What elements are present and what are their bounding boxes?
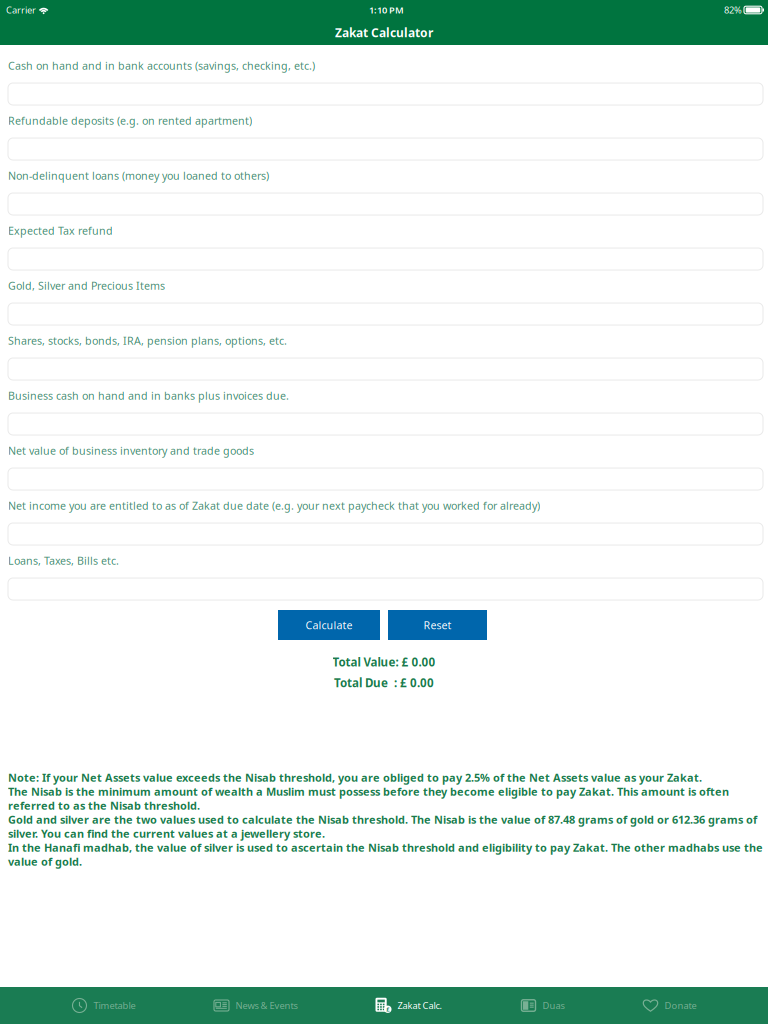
button[interactable] <box>8 138 763 160</box>
button[interactable]: £ <box>375 987 442 1024</box>
staticText: £ <box>386 1005 389 1013</box>
staticText: Note: If your Net Assets value exceeds t… <box>8 771 702 785</box>
staticText: Refundable deposits (e.g. on rented apar… <box>8 113 252 128</box>
staticText: Loans, Taxes, Bills etc. <box>8 553 119 568</box>
button[interactable] <box>8 523 763 545</box>
button[interactable]: Duas <box>520 987 564 1024</box>
button[interactable] <box>8 248 763 270</box>
staticText: 1:10 PM <box>369 4 404 16</box>
staticText: Carrier <box>6 4 36 16</box>
staticText: Timetable <box>93 999 135 1012</box>
staticText: Expected Tax refund <box>8 223 113 238</box>
staticText: 82% <box>724 4 742 16</box>
staticText: Gold and silver are the two values used … <box>8 813 757 841</box>
staticText: Reset <box>423 618 451 632</box>
staticText: Zakat Calc. <box>397 999 442 1012</box>
button[interactable] <box>8 193 763 215</box>
button[interactable] <box>8 468 763 490</box>
staticText: The Nisab is the minimum amount of wealt… <box>8 785 729 813</box>
button[interactable] <box>8 578 763 600</box>
button[interactable] <box>8 83 763 105</box>
staticText: In the Hanafi madhab, the value of silve… <box>8 841 763 869</box>
staticText: Total Due : £ 0.00 <box>334 675 434 691</box>
staticText: Net value of business inventory and trad… <box>8 443 254 458</box>
button[interactable]: Donate <box>642 987 696 1024</box>
staticText: Zakat Calculator <box>335 24 433 40</box>
staticText: Shares, stocks, bonds, IRA, pension plan… <box>8 333 287 348</box>
button[interactable]: News & Events <box>213 987 297 1024</box>
button[interactable]: Reset <box>388 610 487 640</box>
staticText: Net income you are entitled to as of Zak… <box>8 498 540 513</box>
button[interactable] <box>8 358 763 380</box>
button[interactable] <box>8 413 763 435</box>
staticText: Gold, Silver and Precious Items <box>8 278 165 293</box>
staticText: Cash on hand and in bank accounts (savin… <box>8 58 315 73</box>
staticText: Duas <box>542 999 564 1012</box>
button[interactable] <box>8 303 763 325</box>
staticText: Calculate <box>305 618 352 632</box>
staticText: Non-delinquent loans (money you loaned t… <box>8 168 269 183</box>
staticText: Donate <box>664 999 696 1012</box>
staticText: News & Events <box>235 999 297 1012</box>
button[interactable]: Calculate <box>278 610 380 640</box>
staticText: Business cash on hand and in banks plus … <box>8 388 289 403</box>
staticText: Total Value: £ 0.00 <box>332 654 435 670</box>
button[interactable]: Timetable <box>71 987 135 1024</box>
